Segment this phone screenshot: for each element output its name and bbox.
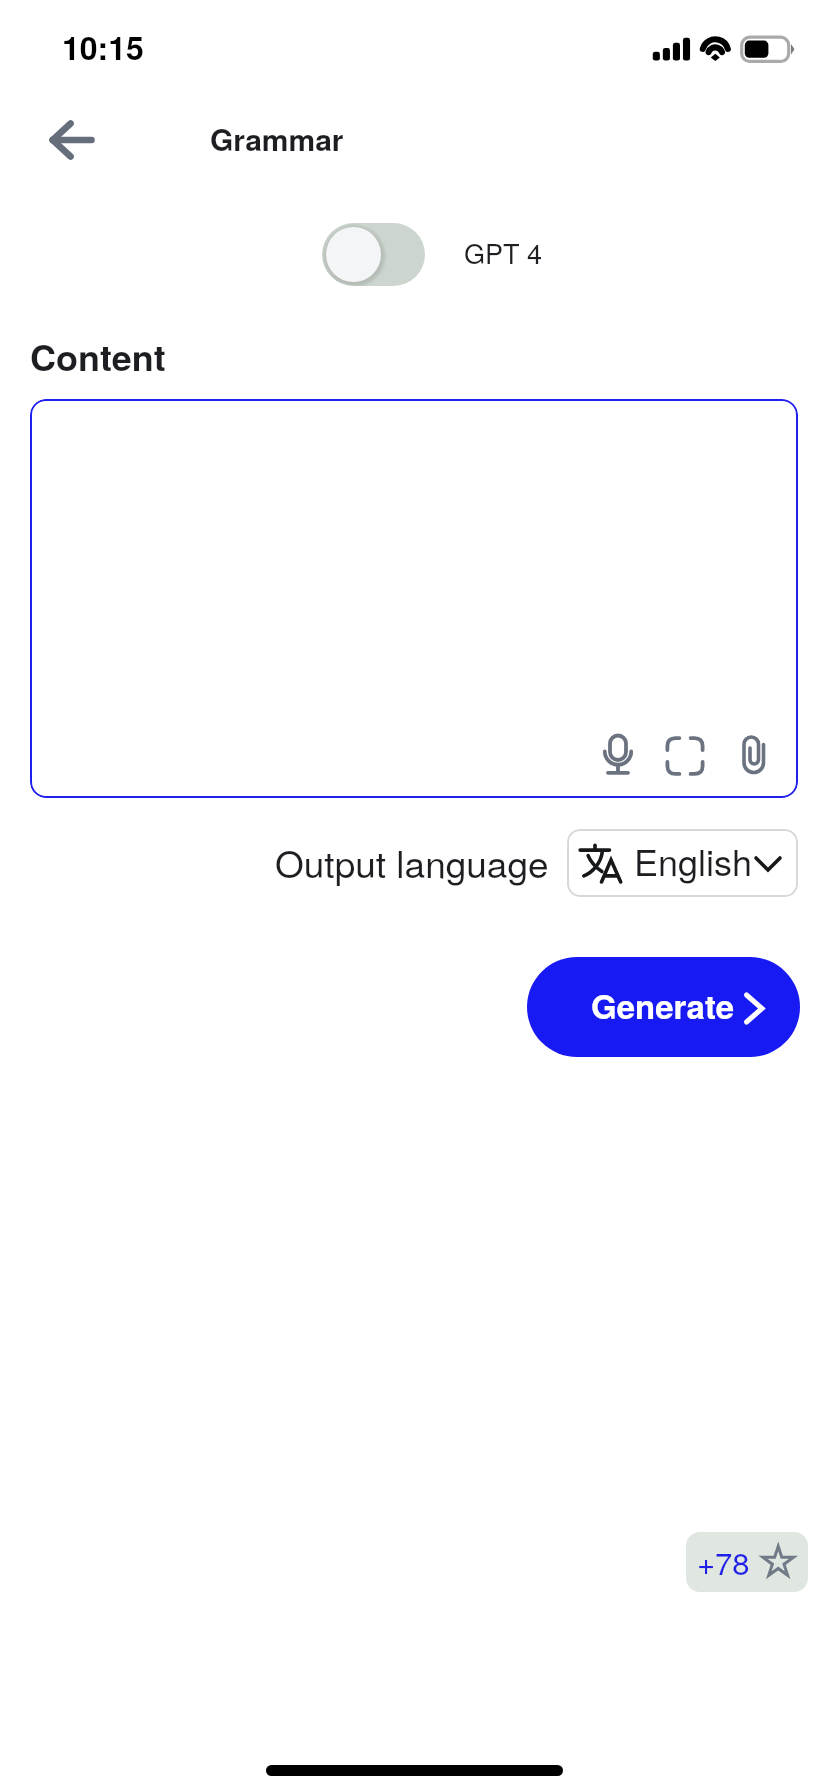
staticText: Output language: [275, 836, 549, 889]
button[interactable]: Voice input: [585, 722, 651, 788]
button[interactable]: Attach file: [721, 722, 787, 788]
staticText: GPT 4: [464, 233, 543, 272]
staticText: Generate: [591, 982, 735, 1029]
button[interactable]: Scan: [652, 722, 718, 788]
staticText: +78: [697, 1539, 750, 1583]
button[interactable]: Generate: [527, 957, 800, 1057]
staticText: Grammar: [210, 117, 344, 160]
staticText: 10:15: [62, 24, 144, 70]
button[interactable]: Back: [36, 106, 108, 174]
staticText: English: [634, 835, 753, 887]
button[interactable]: GPT 4 toggle: [322, 223, 425, 286]
button[interactable]: +78: [686, 1532, 808, 1592]
button[interactable]: Output language English: [567, 829, 798, 897]
button[interactable]: Voice input: [30, 399, 798, 798]
staticText: Content: [30, 330, 166, 382]
